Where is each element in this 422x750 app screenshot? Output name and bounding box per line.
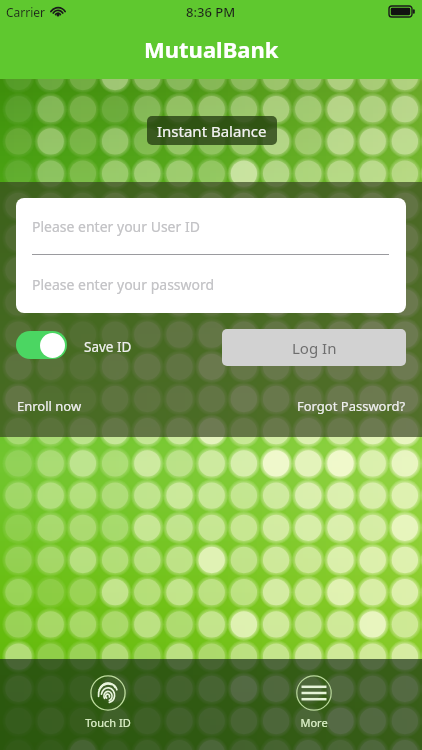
button[interactable]: Please enter your password	[16, 255, 406, 313]
staticText: Instant Balance	[157, 121, 267, 141]
button[interactable]: More	[274, 675, 354, 730]
button[interactable]: Instant Balance	[147, 116, 277, 145]
staticText: MutualBank	[144, 34, 279, 64]
staticText: More	[300, 715, 328, 730]
button[interactable]: Touch ID	[68, 675, 148, 730]
staticText: Log In	[292, 338, 337, 358]
button[interactable]: Please enter your User ID	[16, 198, 406, 255]
staticText: Touch ID	[85, 715, 131, 730]
staticText: Carrier	[6, 4, 46, 20]
button[interactable]: Save ID toggle	[16, 331, 67, 359]
staticText: Forgot Password?	[297, 397, 406, 415]
button[interactable]: Enroll now	[17, 397, 82, 415]
button[interactable]: Log In	[222, 329, 406, 366]
staticText: Please enter your password	[32, 275, 215, 294]
staticText: Enroll now	[17, 397, 82, 415]
button[interactable]: Forgot Password?	[297, 397, 406, 415]
staticText: Save ID	[84, 338, 132, 356]
staticText: Please enter your User ID	[32, 217, 200, 236]
staticText: 8:36 PM	[186, 3, 236, 21]
